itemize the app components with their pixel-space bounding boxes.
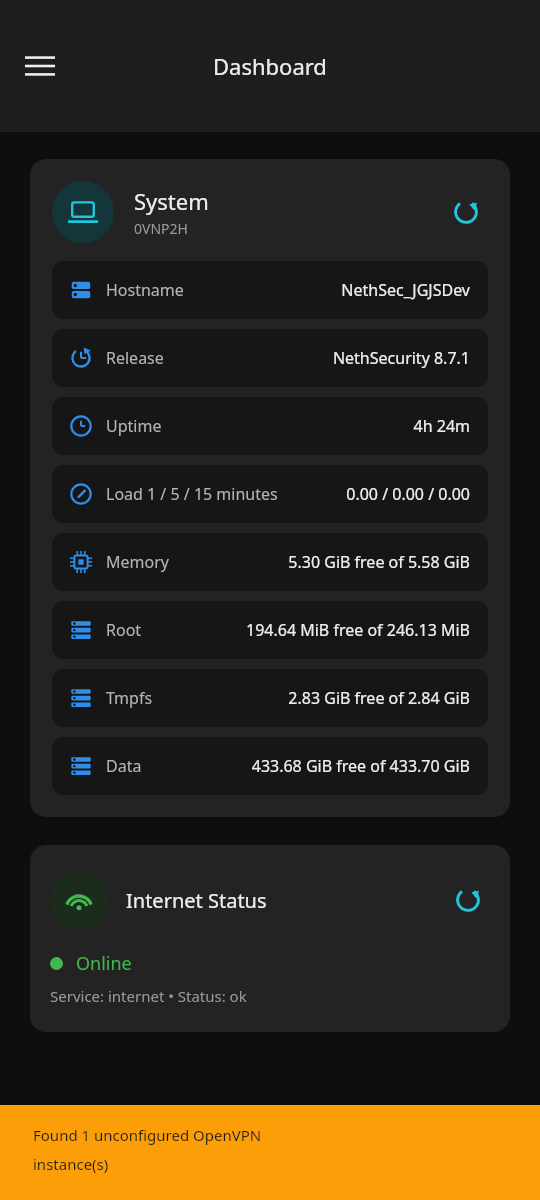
staticText: Root xyxy=(106,619,142,641)
staticText: 0.00 / 0.00 / 0.00 xyxy=(346,483,470,505)
staticText: Service: internet • Status: ok xyxy=(50,986,247,1006)
button[interactable]: Tmpfs xyxy=(52,669,488,727)
staticText: Data xyxy=(106,755,142,777)
button[interactable]: Uptime xyxy=(52,397,488,455)
staticText: Load 1 / 5 / 15 minutes xyxy=(106,483,278,505)
staticText: 2.83 GiB free of 2.84 GiB xyxy=(288,687,470,709)
staticText: NethSecurity 8.7.1 xyxy=(332,347,470,369)
staticText: 0VNP2H xyxy=(134,219,188,238)
button[interactable]: Hostname xyxy=(52,261,488,319)
button[interactable]: Refresh internet status xyxy=(446,878,490,922)
staticText: NethSec_JGJSDev xyxy=(341,279,470,301)
staticText: 433.68 GiB free of 433.70 GiB xyxy=(251,755,470,777)
staticText: Found 1 unconfigured OpenVPN instance(s) xyxy=(33,1125,262,1174)
staticText: Release xyxy=(106,347,164,369)
button[interactable]: Memory xyxy=(52,533,488,591)
button[interactable]: Load 1 / 5 / 15 minutes xyxy=(52,465,488,523)
staticText: System xyxy=(134,186,209,216)
button[interactable]: Root xyxy=(52,601,488,659)
button[interactable]: Data xyxy=(52,737,488,795)
staticText: Dashboard xyxy=(213,51,327,81)
staticText: 5.30 GiB free of 5.58 GiB xyxy=(288,551,470,573)
button[interactable]: Open navigation menu xyxy=(14,40,66,92)
staticText: 194.64 MiB free of 246.13 MiB xyxy=(245,619,470,641)
staticText: Tmpfs xyxy=(106,687,153,709)
button[interactable]: Release xyxy=(52,329,488,387)
button[interactable]: Found 1 unconfigured OpenVPN instance(s) xyxy=(0,1105,540,1200)
staticText: Uptime xyxy=(106,415,162,437)
staticText: Internet Status xyxy=(126,887,446,914)
staticText: 4h 24m xyxy=(413,415,470,437)
staticText: Online xyxy=(76,951,132,976)
staticText: Memory xyxy=(106,551,169,573)
staticText: Hostname xyxy=(106,279,184,301)
button[interactable]: Refresh system xyxy=(444,190,488,234)
